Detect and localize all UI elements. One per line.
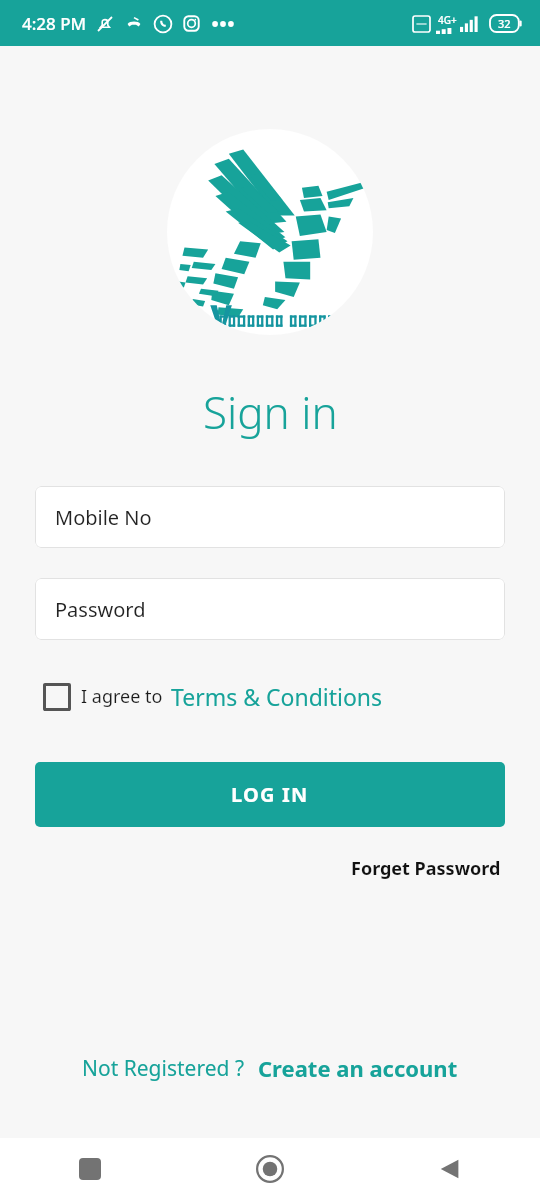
button[interactable]: Mobile No xyxy=(35,486,505,548)
button[interactable]: Home xyxy=(180,1138,360,1200)
staticText: Password xyxy=(55,596,146,623)
button[interactable]: Back xyxy=(360,1138,540,1200)
button[interactable]: Password xyxy=(35,578,505,640)
staticText: 32 xyxy=(498,16,511,31)
staticText: Not Registered ? xyxy=(82,1054,245,1083)
staticText: 4G+ xyxy=(438,13,457,27)
staticText: 4:28 PM xyxy=(22,12,87,35)
button[interactable]: Create an account xyxy=(258,1053,458,1083)
staticText: LOG IN xyxy=(231,781,309,808)
button[interactable]: LOG IN xyxy=(35,762,505,827)
button[interactable]: Forget Password xyxy=(347,852,505,885)
button[interactable]: Not Registered ? xyxy=(82,1054,245,1083)
button[interactable]: I agree to xyxy=(43,681,383,712)
staticText: Terms & Conditions xyxy=(171,681,383,712)
staticText: Mobile No xyxy=(55,504,152,531)
staticText: Create an account xyxy=(258,1053,458,1083)
button[interactable]: Recent apps xyxy=(0,1138,180,1200)
staticText: Forget Password xyxy=(351,856,501,881)
staticText: Sign in xyxy=(203,382,338,442)
staticText: I agree to xyxy=(81,684,163,709)
